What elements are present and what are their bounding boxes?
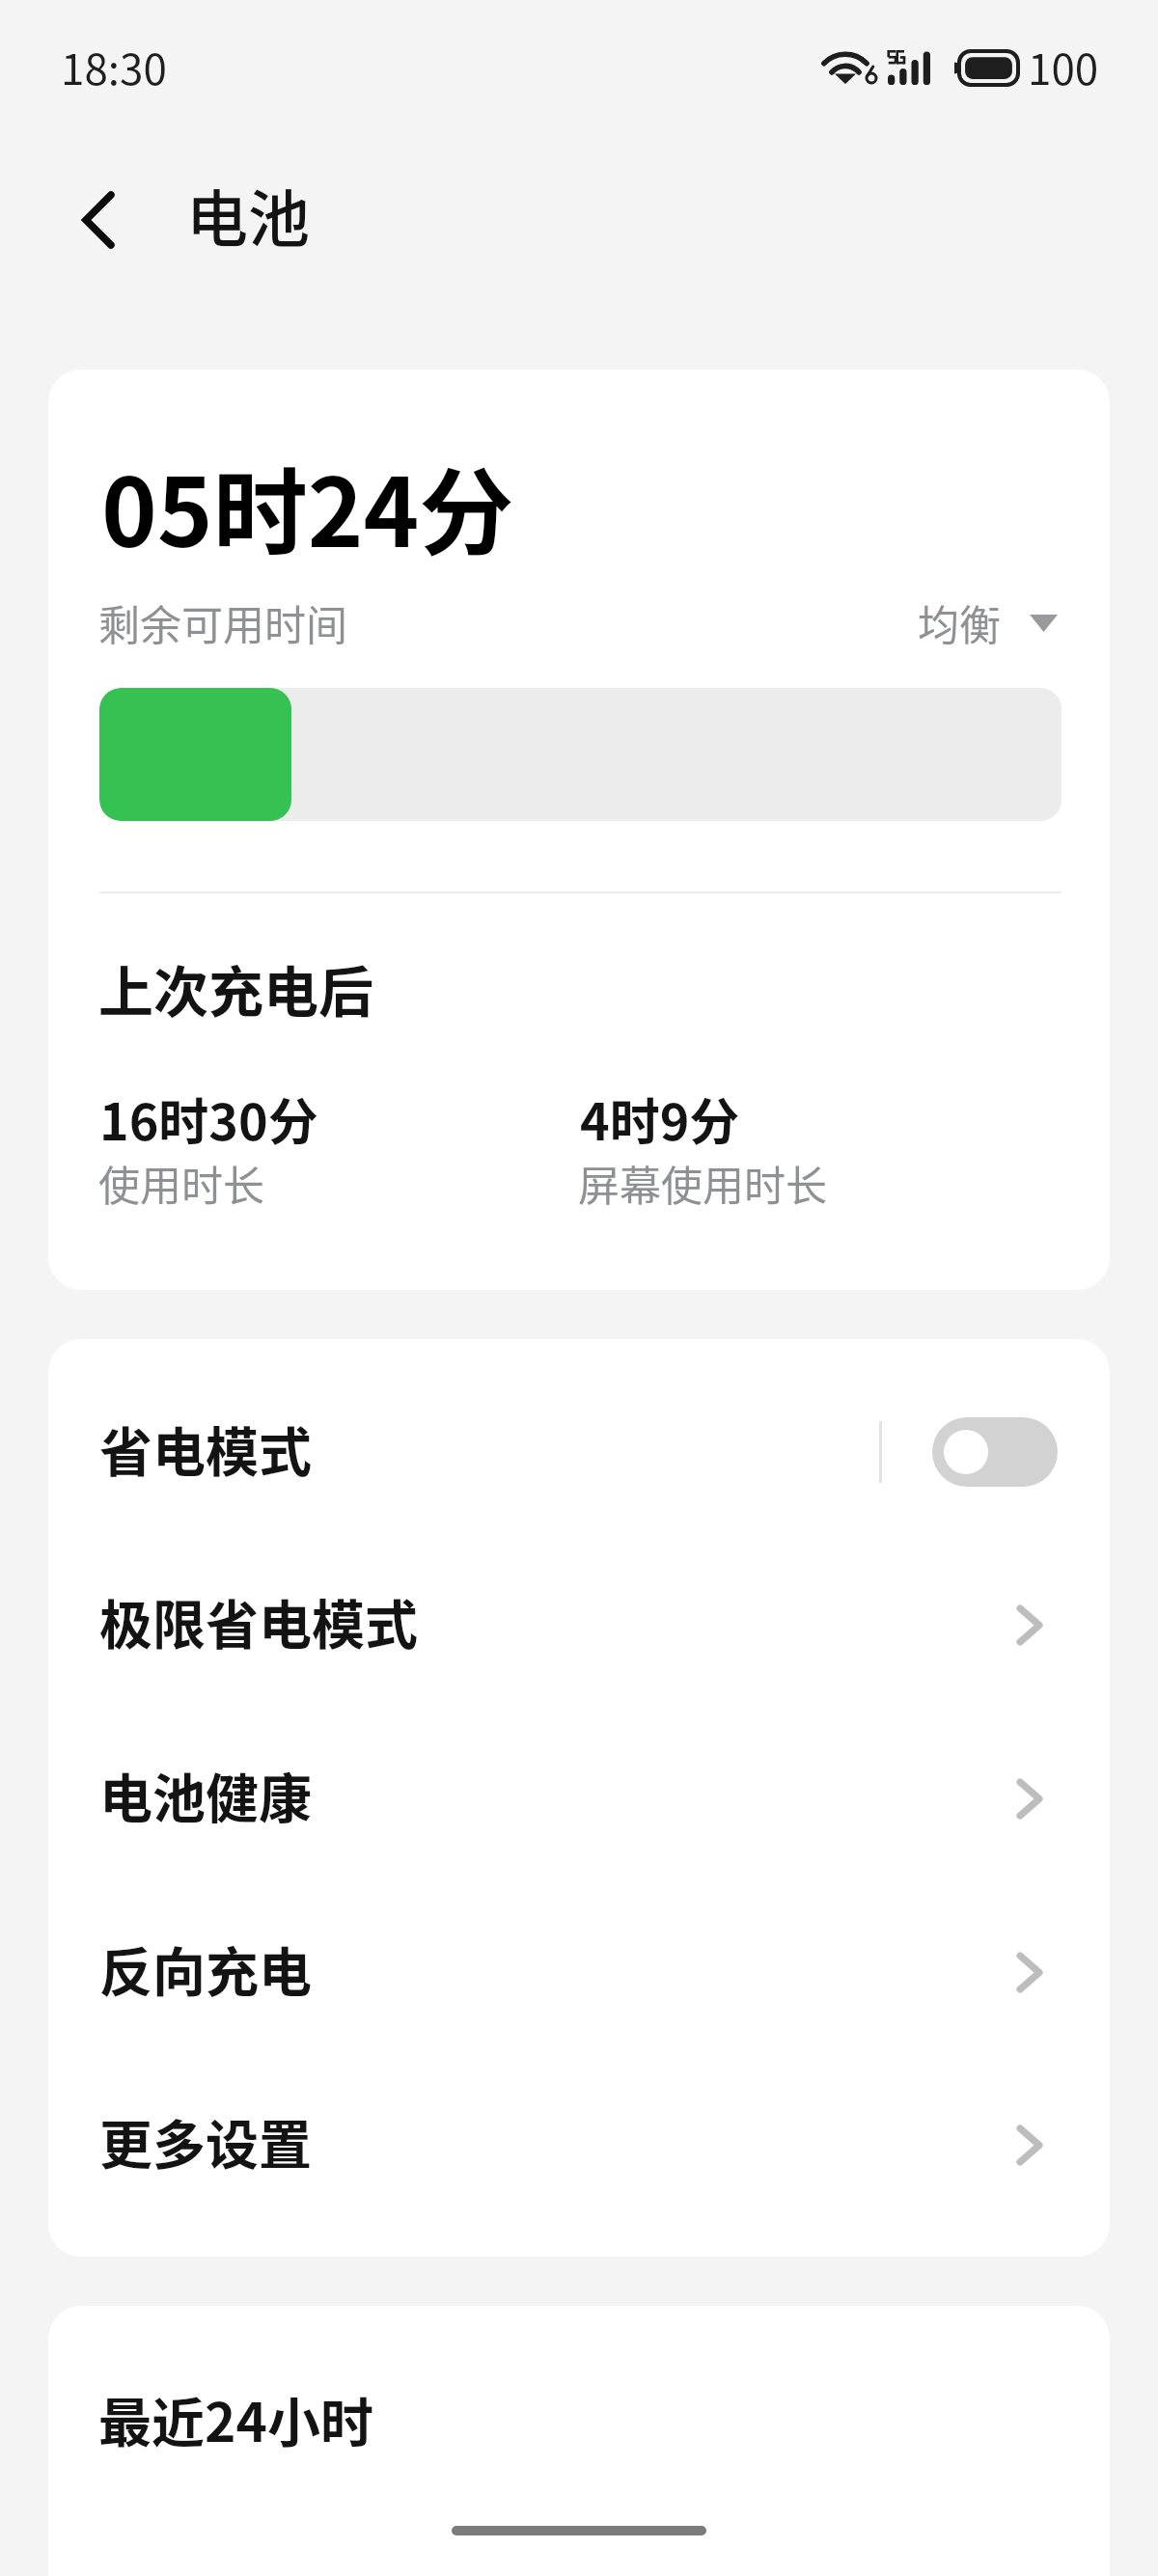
staticText: 16时30分 xyxy=(99,1082,318,1155)
staticText: 极限省电模式 xyxy=(99,1582,419,1659)
button[interactable]: Back xyxy=(54,176,143,264)
button[interactable]: 均衡 xyxy=(907,574,1061,651)
button[interactable]: 极限省电模式 xyxy=(48,1538,1110,1712)
staticText: 上次充电后 xyxy=(98,948,373,1028)
staticText: 电池健康 xyxy=(99,1756,313,1833)
staticText: 使用时长 xyxy=(98,1153,264,1213)
staticText: 最近24小时 xyxy=(98,2380,373,2457)
button[interactable]: 反向充电 xyxy=(48,1885,1110,2059)
staticText: 反向充电 xyxy=(99,1930,313,2007)
staticText: 电池 xyxy=(186,170,310,260)
staticText: 4时9分 xyxy=(580,1082,740,1155)
button[interactable]: 更多设置 xyxy=(48,2058,1110,2232)
staticText: 剩余可用时间 xyxy=(98,592,347,652)
staticText: 18:30 xyxy=(61,36,167,97)
staticText: 屏幕使用时长 xyxy=(578,1153,827,1213)
button[interactable]: 电池健康 xyxy=(48,1712,1110,1885)
staticText: 100 xyxy=(1028,36,1099,97)
staticText: 05时24分 xyxy=(101,437,514,574)
button[interactable]: Power saving mode toggle xyxy=(932,1417,1058,1487)
staticText: 省电模式 xyxy=(99,1410,313,1487)
staticText: 均衡 xyxy=(918,592,1001,652)
staticText: 更多设置 xyxy=(99,2102,313,2179)
button[interactable]: 省电模式 xyxy=(48,1365,1110,1539)
